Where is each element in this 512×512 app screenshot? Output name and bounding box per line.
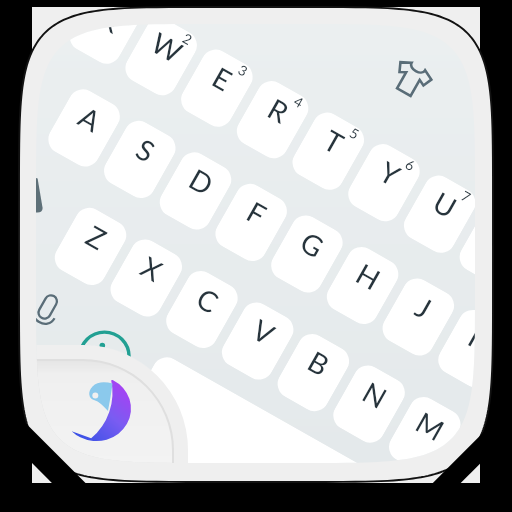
staticText: 4 bbox=[291, 94, 306, 111]
button[interactable]: R bbox=[231, 76, 314, 164]
button[interactable]: S bbox=[99, 115, 181, 203]
button[interactable]: U bbox=[398, 170, 475, 258]
staticText: 3 bbox=[235, 62, 250, 80]
staticText: M bbox=[410, 404, 450, 447]
button[interactable]: E bbox=[176, 44, 258, 132]
button[interactable]: D bbox=[154, 147, 237, 235]
button[interactable]: K bbox=[433, 304, 475, 392]
button[interactable]: T bbox=[287, 107, 369, 195]
staticText: U bbox=[428, 185, 463, 225]
staticText: 6 bbox=[402, 157, 417, 174]
staticText: 2 bbox=[179, 31, 194, 48]
button[interactable]: M bbox=[384, 392, 466, 463]
staticText: D bbox=[183, 161, 219, 202]
staticText: V bbox=[246, 312, 280, 351]
button[interactable]: H bbox=[321, 241, 404, 329]
staticText: R bbox=[262, 91, 295, 130]
button[interactable]: N bbox=[328, 360, 410, 448]
staticText: 7 bbox=[458, 188, 473, 206]
staticText: H bbox=[350, 256, 386, 296]
button[interactable]: X bbox=[105, 234, 187, 322]
staticText: T bbox=[318, 123, 349, 161]
button[interactable]: V bbox=[216, 297, 299, 385]
button[interactable]: W bbox=[120, 24, 202, 101]
button[interactable]: C bbox=[161, 265, 243, 353]
staticText: N bbox=[357, 374, 393, 415]
button[interactable]: B bbox=[272, 328, 354, 416]
button[interactable]: Y bbox=[343, 139, 425, 227]
button[interactable]: G bbox=[266, 210, 348, 298]
staticText: Z bbox=[80, 218, 113, 256]
button[interactable]: I bbox=[454, 202, 475, 290]
button[interactable]: J bbox=[377, 273, 459, 361]
staticText: Y bbox=[374, 154, 406, 193]
staticText: E bbox=[206, 60, 238, 98]
staticText: K bbox=[463, 319, 475, 358]
button[interactable]: Space bbox=[36, 352, 475, 463]
button[interactable]: F bbox=[210, 178, 292, 266]
button[interactable]: Z bbox=[49, 202, 132, 290]
staticText: S bbox=[130, 131, 161, 169]
staticText: 5 bbox=[346, 125, 362, 143]
staticText: Q bbox=[92, 24, 129, 36]
staticText: G bbox=[295, 224, 330, 264]
staticText: W bbox=[146, 25, 188, 69]
button[interactable]: Open app bbox=[36, 345, 188, 463]
staticText: C bbox=[191, 280, 225, 320]
staticText: B bbox=[302, 343, 335, 382]
staticText: F bbox=[241, 194, 272, 232]
button[interactable]: Theme bbox=[391, 59, 431, 99]
staticText: J bbox=[410, 289, 438, 325]
button[interactable]: A bbox=[43, 84, 125, 172]
staticText: A bbox=[73, 99, 107, 138]
staticText: X bbox=[135, 249, 168, 288]
button[interactable]: Q bbox=[64, 24, 147, 69]
